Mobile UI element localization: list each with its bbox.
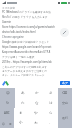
staticText: https://www.google.com/search?q=reset	[2, 45, 52, 49]
staticText: は	[49, 101, 53, 106]
staticText: ABC	[4, 111, 10, 115]
button[interactable]: ☺	[0, 118, 7, 128]
button[interactable]: さ	[44, 88, 58, 98]
staticText: アプリを開く 一覧から選択	[2, 55, 35, 59]
staticText: &oq=reset&sourceid=chrome&ie=UTF-8	[2, 50, 51, 54]
staticText: た	[21, 101, 25, 106]
button[interactable]: は	[44, 98, 58, 108]
staticText: ⌫	[62, 91, 68, 95]
staticText: ☺	[6, 91, 10, 95]
button[interactable]: や	[28, 108, 43, 118]
button[interactable]: ま	[14, 108, 28, 118]
button[interactable]: ⌫	[58, 88, 72, 98]
staticText: な	[35, 101, 39, 106]
button[interactable]: た	[15, 98, 30, 108]
button[interactable]: あ	[15, 88, 30, 98]
staticText: device/sdk-tools/index.html	[2, 30, 36, 34]
staticText: ら	[49, 111, 53, 116]
staticText: わ	[34, 121, 38, 126]
staticText: ☺	[2, 122, 6, 125]
staticText: さ	[49, 91, 53, 96]
button[interactable]: な	[30, 98, 44, 108]
staticText: Store https://connect.com/ja/garmin/watc…	[2, 25, 55, 29]
staticText: またデータも消えますのでご注意くだ	[2, 69, 47, 72]
staticText: PC (Windows) のドライバを確認する方法	[2, 10, 51, 14]
staticText: 小	[19, 121, 23, 126]
staticText: 、	[49, 121, 53, 126]
button[interactable]: 空白	[58, 98, 72, 108]
button[interactable]: か	[30, 88, 44, 98]
staticText: 空白	[62, 101, 68, 105]
staticText: さい。メニュー > 設定 > ストレージ	[2, 73, 45, 77]
button[interactable]: ら	[43, 108, 58, 118]
staticText: スマホ設定	[2, 6, 16, 9]
staticText: 改行	[62, 116, 68, 120]
button[interactable]: 改行	[58, 108, 72, 128]
staticText: Google 検索 設定 > 詳細設定 > リセット	[2, 40, 50, 44]
button[interactable]: ABC	[0, 108, 14, 118]
staticText: Garmin	[2, 20, 12, 24]
staticText: ⚙	[9, 122, 12, 125]
staticText: これらのアプリはすべて削除されます	[2, 65, 48, 68]
button[interactable]: ⚙	[7, 118, 14, 128]
button[interactable]: Edit	[60, 28, 69, 37]
staticText: あア	[62, 81, 69, 85]
button[interactable]: ↻	[0, 98, 15, 108]
staticText: あ	[21, 91, 25, 96]
staticText: file://c:/ の場合 ドライブ を入力します	[2, 15, 48, 19]
button[interactable]: ☺	[0, 88, 15, 98]
staticText: 2018年 - https://example.com/ja/item/ab	[2, 60, 52, 64]
button[interactable]: 小	[14, 118, 28, 128]
button[interactable]: わ	[28, 118, 43, 128]
staticText: か	[35, 91, 39, 96]
staticText: ま	[19, 111, 23, 116]
staticText: や	[34, 111, 38, 116]
staticText: ↻	[6, 101, 10, 105]
button[interactable]: Drive	[2, 80, 9, 87]
button[interactable]: あア	[60, 81, 70, 85]
staticText: Chrome apngaine	[2, 35, 24, 39]
